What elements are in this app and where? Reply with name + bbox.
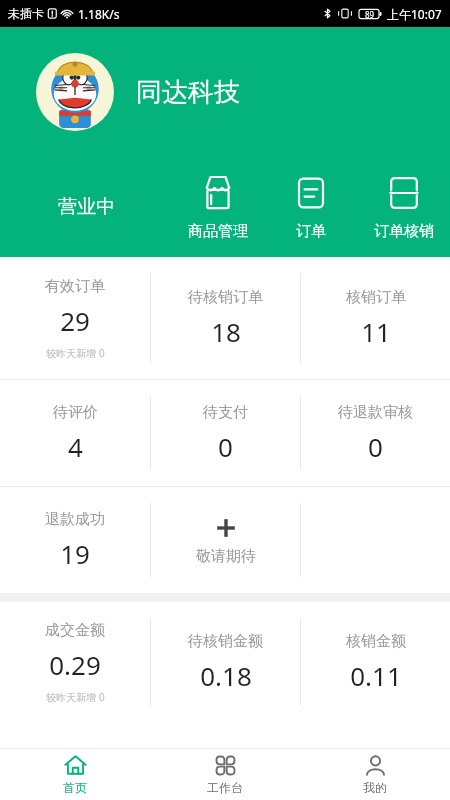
- button[interactable]: 成交金额: [0, 602, 150, 722]
- staticText: 订单核销: [374, 222, 434, 241]
- staticText: 敬请期待: [196, 547, 256, 566]
- staticText: 0: [218, 429, 233, 464]
- staticText: 退款成功: [45, 510, 105, 529]
- staticText: 未插卡: [8, 6, 44, 21]
- staticText: 较昨天新增 0: [46, 690, 105, 704]
- other: 订单核销: [384, 173, 424, 213]
- other: 订单: [291, 173, 331, 213]
- staticText: 核销订单: [346, 288, 406, 307]
- staticText: 订单: [296, 222, 326, 241]
- staticText: 0: [368, 429, 383, 464]
- staticText: 工作台: [207, 780, 243, 795]
- staticText: 成交金额: [45, 621, 105, 640]
- button[interactable]: 待支付: [151, 380, 300, 486]
- button[interactable]: 待核销订单: [151, 257, 300, 379]
- staticText: 4: [68, 429, 83, 464]
- staticText: 0.18: [200, 658, 252, 693]
- staticText: 待评价: [53, 403, 98, 422]
- staticText: 上午10:07: [387, 6, 442, 22]
- staticText: 0.29: [49, 647, 101, 682]
- button[interactable]: 核销订单: [301, 257, 450, 379]
- staticText: 营业中: [58, 195, 115, 219]
- button[interactable]: 退款成功: [0, 487, 150, 593]
- button[interactable]: 工作台: [150, 749, 300, 800]
- other: 商品管理: [198, 173, 238, 213]
- button[interactable]: 首页: [0, 749, 150, 800]
- staticText: 1.18K/s: [78, 6, 120, 22]
- button[interactable]: 商品管理: [172, 157, 264, 257]
- button[interactable]: 订单核销: [357, 157, 450, 257]
- button[interactable]: 待评价: [0, 380, 150, 486]
- staticText: 有效订单: [45, 277, 105, 296]
- staticText: 11: [361, 314, 391, 349]
- staticText: 89: [365, 9, 375, 20]
- button[interactable]: 核销金额: [301, 602, 450, 722]
- staticText: 18: [211, 314, 241, 349]
- staticText: 待核销订单: [188, 288, 263, 307]
- button[interactable]: 我的: [300, 749, 450, 800]
- button[interactable]: 敬请期待: [151, 487, 300, 593]
- other: 敬请期待: [213, 515, 239, 541]
- button[interactable]: 待核销金额: [151, 602, 300, 722]
- staticText: 待退款审核: [338, 403, 413, 422]
- staticText: 19: [60, 536, 90, 571]
- button[interactable]: 同达科技: [0, 27, 450, 157]
- staticText: 较昨天新增 0: [46, 346, 105, 360]
- staticText: 0.11: [350, 658, 402, 693]
- staticText: 29: [60, 303, 90, 338]
- button[interactable]: 营业中: [0, 157, 172, 257]
- button[interactable]: 待退款审核: [301, 380, 450, 486]
- staticText: 我的: [363, 780, 387, 795]
- button[interactable]: 有效订单: [0, 257, 150, 379]
- button[interactable]: 订单: [264, 157, 357, 257]
- staticText: 核销金额: [346, 632, 406, 651]
- staticText: 首页: [63, 780, 87, 795]
- staticText: 待支付: [203, 403, 248, 422]
- staticText: 商品管理: [188, 222, 248, 241]
- staticText: 同达科技: [136, 76, 240, 109]
- staticText: 待核销金额: [188, 632, 263, 651]
